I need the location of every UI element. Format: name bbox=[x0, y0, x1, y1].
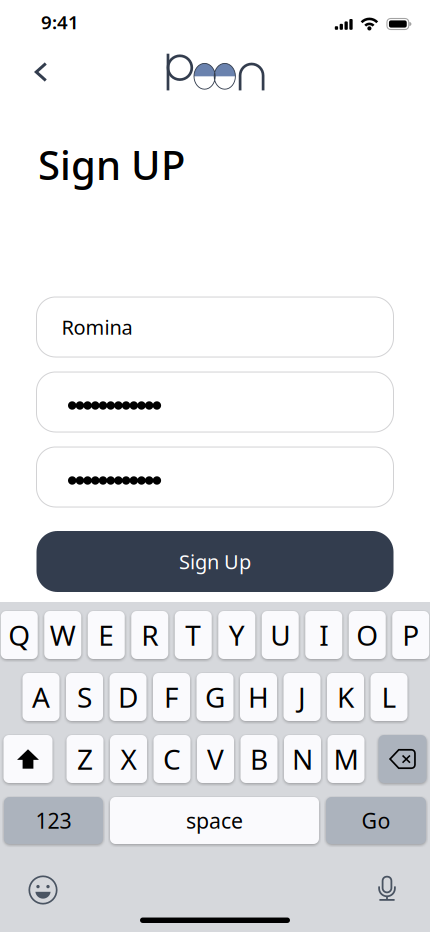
staticText: Romina bbox=[61, 314, 132, 340]
staticText: S bbox=[77, 678, 92, 716]
button[interactable]: Z bbox=[66, 735, 103, 783]
staticText: L bbox=[381, 678, 396, 716]
staticText: Sign UP bbox=[38, 138, 185, 191]
button[interactable]: G bbox=[196, 673, 233, 721]
staticText: space bbox=[186, 806, 243, 835]
button[interactable]: R bbox=[131, 611, 168, 659]
button[interactable]: V bbox=[197, 735, 234, 783]
staticText: T bbox=[185, 616, 201, 654]
button[interactable]: O bbox=[349, 611, 386, 659]
staticText: N bbox=[292, 740, 313, 778]
staticText: Q bbox=[8, 616, 30, 654]
staticText: Sign Up bbox=[179, 548, 251, 575]
button[interactable]: Shift bbox=[3, 735, 52, 783]
button[interactable]: B bbox=[240, 735, 277, 783]
button[interactable]: C bbox=[153, 735, 190, 783]
staticText: A bbox=[32, 678, 50, 716]
button[interactable]: U bbox=[262, 611, 299, 659]
button[interactable] bbox=[36, 372, 393, 432]
button[interactable]: M bbox=[327, 735, 364, 783]
button[interactable]: S bbox=[66, 673, 103, 721]
staticText: Z bbox=[77, 740, 93, 778]
button[interactable]: Emoji keyboard bbox=[17, 874, 69, 906]
staticText: C bbox=[163, 740, 181, 778]
button[interactable]: Sign Up bbox=[36, 531, 393, 592]
staticText: R bbox=[141, 616, 158, 654]
staticText: X bbox=[120, 740, 136, 778]
button[interactable]: Dictation bbox=[361, 874, 413, 906]
button[interactable]: K bbox=[327, 673, 364, 721]
button[interactable]: P bbox=[392, 611, 429, 659]
button[interactable]: H bbox=[240, 673, 277, 721]
staticText: Y bbox=[229, 616, 245, 654]
button[interactable]: I bbox=[305, 611, 342, 659]
button[interactable]: A bbox=[22, 673, 59, 721]
button[interactable]: T bbox=[175, 611, 212, 659]
staticText: O bbox=[356, 616, 378, 654]
button[interactable]: F bbox=[153, 673, 190, 721]
staticText: W bbox=[50, 616, 76, 654]
button[interactable]: Q bbox=[1, 611, 38, 659]
button[interactable]: N bbox=[284, 735, 321, 783]
staticText: B bbox=[250, 740, 268, 778]
staticText: G bbox=[205, 678, 225, 716]
button[interactable]: space bbox=[110, 797, 319, 844]
staticText: H bbox=[248, 678, 269, 716]
staticText: 123 bbox=[35, 806, 71, 835]
staticText: P bbox=[402, 616, 419, 654]
staticText: E bbox=[98, 616, 114, 654]
button[interactable]: 123 bbox=[4, 797, 103, 844]
button[interactable]: Y bbox=[218, 611, 255, 659]
button[interactable]: D bbox=[109, 673, 146, 721]
staticText: U bbox=[270, 616, 290, 654]
button[interactable]: W bbox=[44, 611, 81, 659]
staticText: J bbox=[298, 678, 306, 716]
staticText: M bbox=[333, 740, 358, 778]
button[interactable]: Romina bbox=[36, 297, 393, 357]
button[interactable] bbox=[36, 447, 393, 507]
staticText: F bbox=[164, 678, 179, 716]
button[interactable]: X bbox=[110, 735, 147, 783]
staticText: I bbox=[319, 616, 328, 654]
staticText: Go bbox=[361, 806, 390, 835]
button[interactable]: L bbox=[370, 673, 407, 721]
staticText: D bbox=[118, 678, 138, 716]
button[interactable]: Back bbox=[19, 50, 63, 94]
staticText: K bbox=[337, 678, 354, 716]
staticText: 9:41 bbox=[41, 10, 79, 34]
button[interactable]: Delete bbox=[378, 735, 426, 783]
button[interactable]: J bbox=[283, 673, 320, 721]
button[interactable]: Go bbox=[326, 797, 426, 844]
button[interactable]: E bbox=[88, 611, 125, 659]
staticText: V bbox=[207, 740, 224, 778]
